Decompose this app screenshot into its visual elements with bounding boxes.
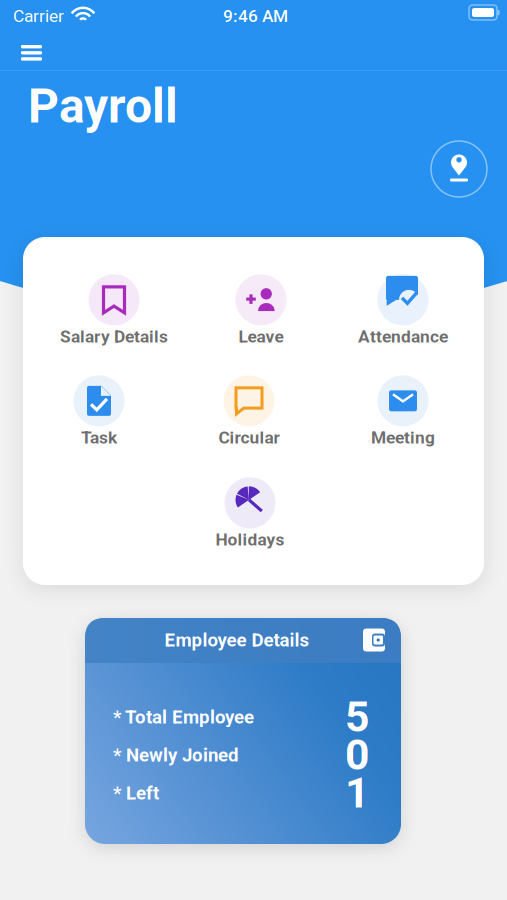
button[interactable]: Menu bbox=[8, 33, 55, 73]
staticText: Task bbox=[81, 427, 117, 448]
staticText: Meeting bbox=[371, 427, 435, 448]
staticText: Attendance bbox=[358, 326, 448, 347]
staticText: Salary Details bbox=[60, 326, 168, 347]
staticText: Payroll bbox=[28, 78, 178, 134]
button[interactable]: Task bbox=[19, 366, 179, 456]
staticText: Holidays bbox=[215, 529, 284, 550]
staticText: Leave bbox=[238, 326, 283, 347]
staticText: 0 bbox=[345, 730, 369, 780]
staticText: Employee Details bbox=[164, 629, 309, 651]
button[interactable]: Holidays bbox=[170, 468, 330, 558]
button[interactable]: Circular bbox=[169, 366, 329, 456]
button[interactable]: Location bbox=[431, 141, 487, 197]
staticText: 9:46 AM bbox=[223, 6, 288, 26]
staticText: * Total Employee bbox=[113, 706, 254, 728]
staticText: 1 bbox=[345, 768, 369, 818]
button[interactable]: Attendance bbox=[323, 265, 483, 355]
button[interactable]: Salary Details bbox=[34, 265, 194, 355]
staticText: Carrier bbox=[13, 6, 64, 26]
staticText: * Newly Joined bbox=[113, 744, 239, 766]
staticText: * Left bbox=[113, 782, 159, 804]
button[interactable]: Leave bbox=[181, 265, 341, 355]
staticText: Circular bbox=[218, 427, 279, 448]
button[interactable]: Meeting bbox=[323, 366, 483, 456]
staticText: 5 bbox=[345, 692, 369, 742]
